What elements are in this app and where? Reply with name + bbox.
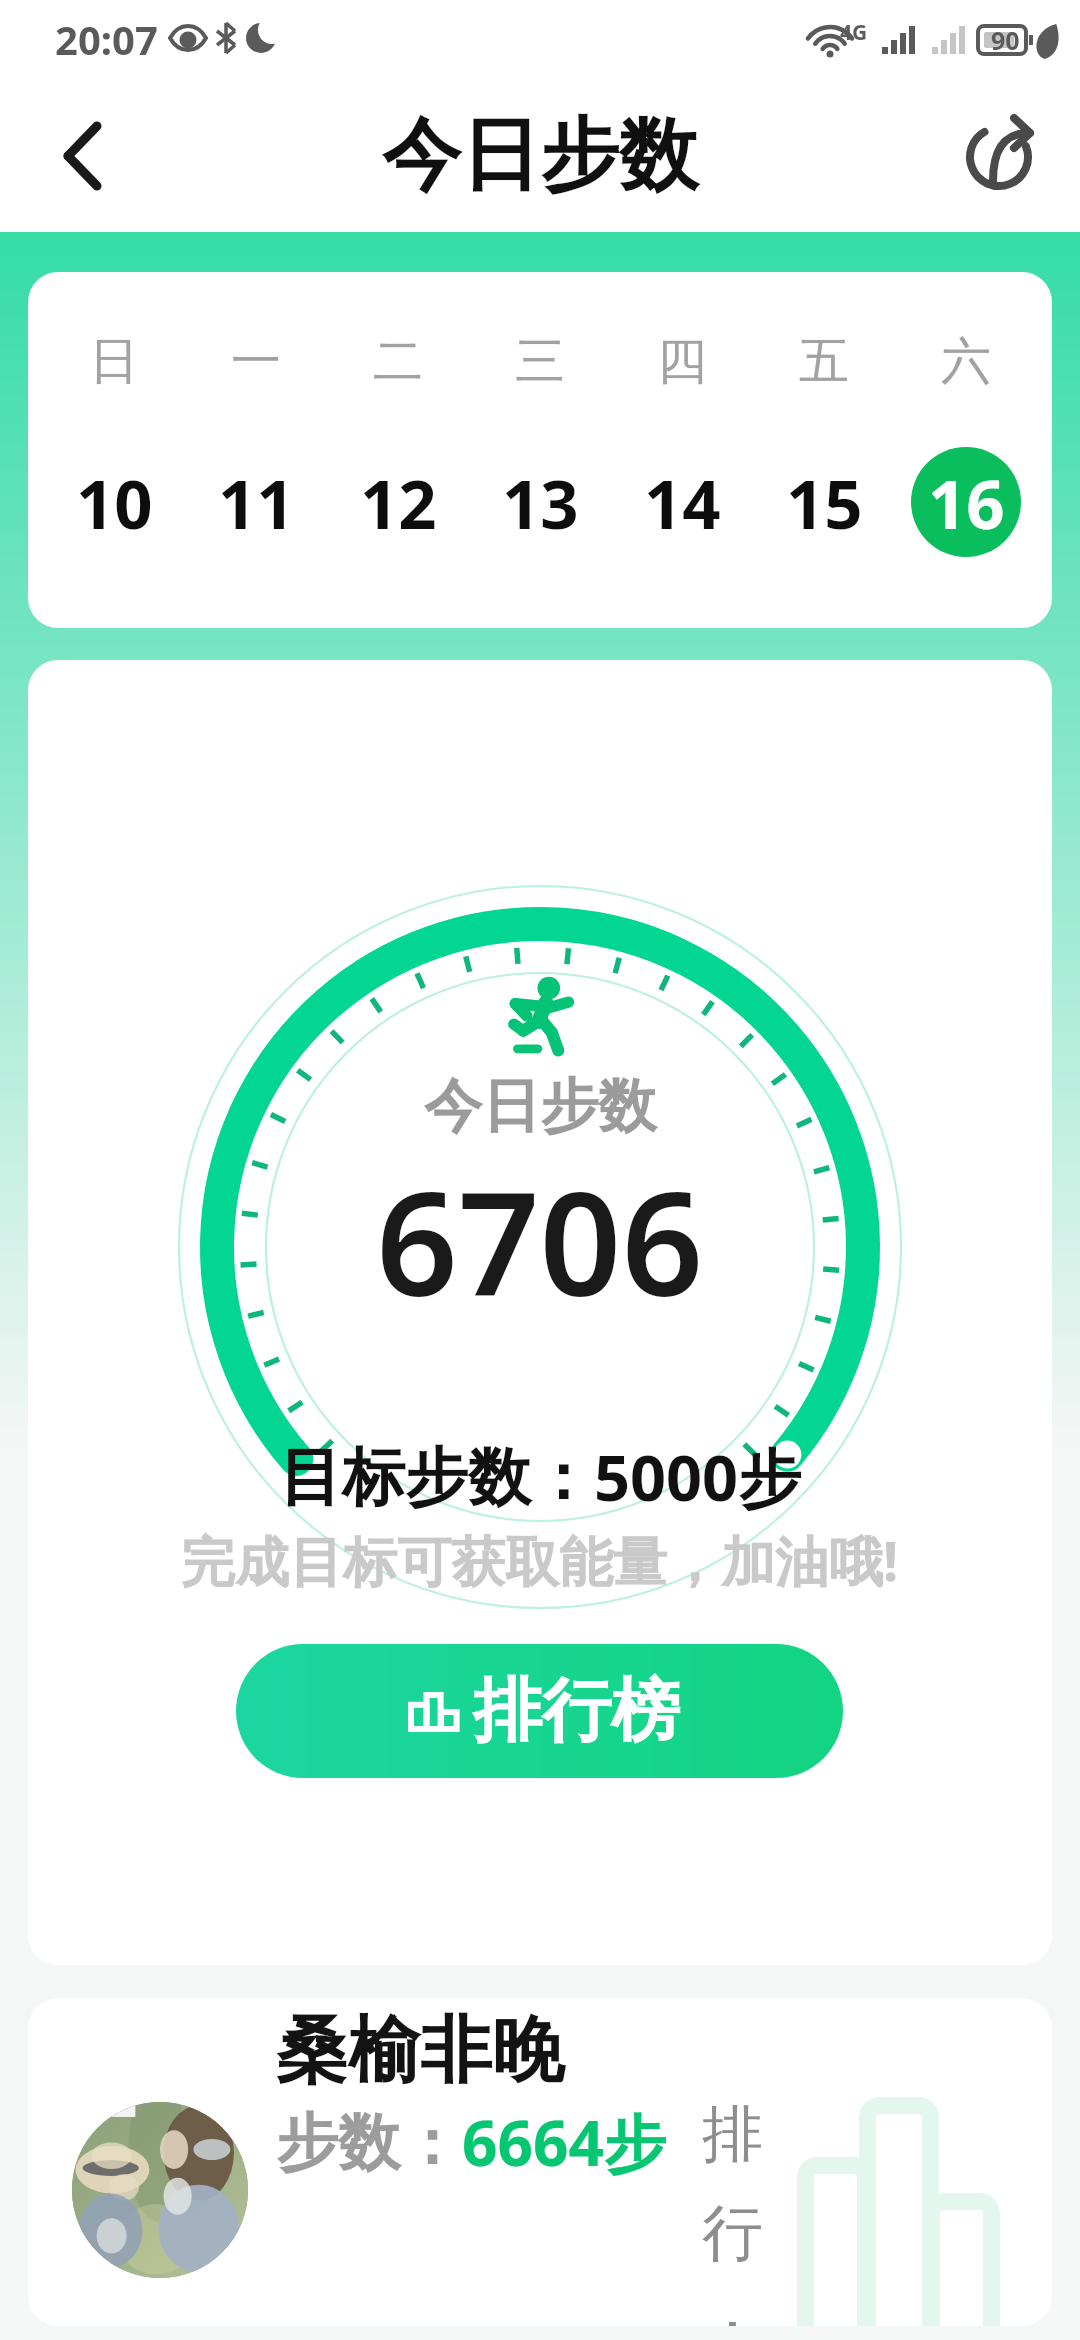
staticText: 5000步 xyxy=(594,1434,802,1520)
button[interactable]: 桑榆非晚 xyxy=(28,1998,1052,2326)
staticText: 今日步数 xyxy=(382,106,698,206)
staticText: 排行榜 xyxy=(473,1668,680,1755)
staticText: 二 xyxy=(373,330,423,393)
staticText: 4G xyxy=(840,18,868,47)
staticText: 六 xyxy=(941,330,991,393)
button[interactable]: 排行榜 xyxy=(236,1644,843,1778)
button[interactable]: 11 xyxy=(201,447,311,557)
button[interactable]: 10 xyxy=(59,447,169,557)
staticText: 五 xyxy=(799,330,849,393)
staticText: 今日步数 xyxy=(424,1070,656,1143)
staticText: 13 xyxy=(502,457,579,548)
staticText: ： xyxy=(702,2294,763,2326)
staticText: 90 xyxy=(991,23,1020,57)
staticText: 目标步数： xyxy=(279,1438,594,1517)
staticText: 步数： xyxy=(276,2104,462,2182)
staticText: 排 xyxy=(702,2096,763,2173)
staticText: 16 xyxy=(928,457,1005,548)
button[interactable]: Share xyxy=(961,119,1037,195)
staticText: 三 xyxy=(515,330,565,393)
button[interactable]: 12 xyxy=(343,447,453,557)
button[interactable]: 14 xyxy=(627,447,737,557)
button[interactable]: 13 xyxy=(485,447,595,557)
staticText: 14 xyxy=(644,457,721,548)
staticText: 一 xyxy=(231,330,281,393)
staticText: 行 xyxy=(702,2195,763,2272)
staticText: 6706 xyxy=(376,1143,704,1338)
staticText: 20:07 xyxy=(55,12,158,66)
button[interactable]: 16 xyxy=(911,447,1021,557)
staticText: 15 xyxy=(786,457,863,548)
button[interactable]: 15 xyxy=(769,447,879,557)
staticText: 12 xyxy=(360,457,437,548)
staticText: 11 xyxy=(218,457,295,548)
staticText: 四 xyxy=(657,330,707,393)
staticText: 完成目标可获取能量，加油哦! xyxy=(181,1523,899,1597)
staticText: 6664步 xyxy=(462,2100,666,2185)
staticText: 日 xyxy=(89,330,139,393)
staticText: 10 xyxy=(76,457,153,548)
button[interactable]: Back xyxy=(42,116,122,196)
staticText: 桑榆非晚 xyxy=(276,2006,564,2097)
